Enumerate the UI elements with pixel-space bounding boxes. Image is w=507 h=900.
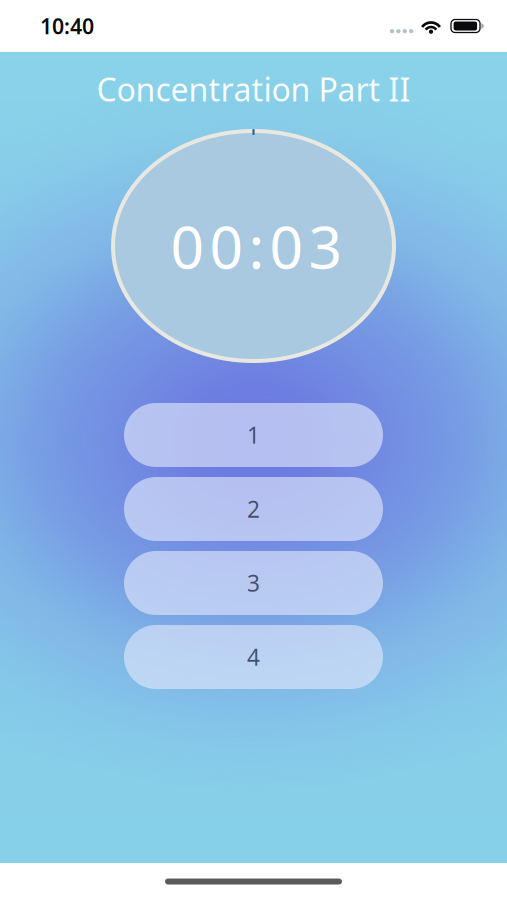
staticText: 3 <box>247 568 260 598</box>
button[interactable]: 3 <box>124 551 383 615</box>
staticText: 00:03 <box>170 207 342 285</box>
staticText: 4 <box>247 642 260 672</box>
button[interactable]: 2 <box>124 477 383 541</box>
staticText: Concentration Part II <box>96 68 410 110</box>
staticText: 1 <box>247 420 260 450</box>
staticText: 10:40 <box>40 12 94 40</box>
staticText: 2 <box>247 494 260 524</box>
button[interactable]: 1 <box>124 403 383 467</box>
button[interactable]: 4 <box>124 625 383 689</box>
